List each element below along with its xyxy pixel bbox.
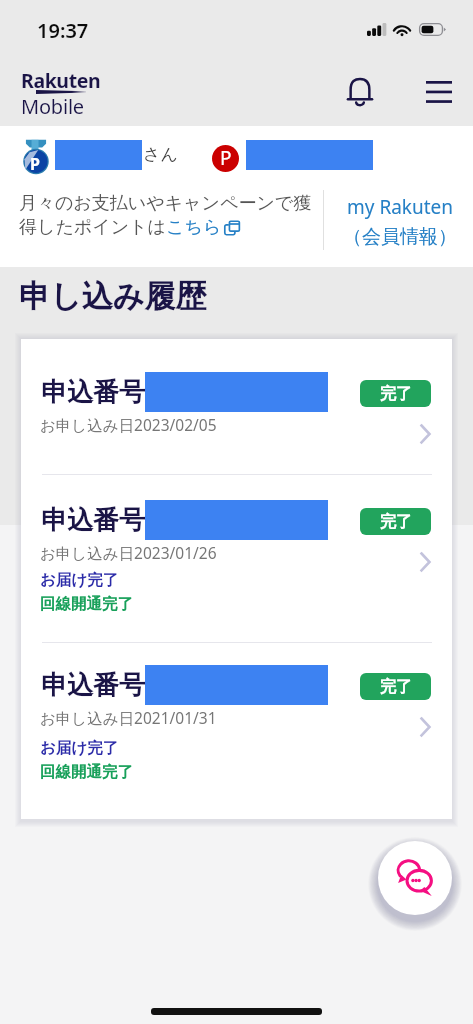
button[interactable]: Chat support: [378, 841, 452, 915]
staticText: 回線開通完了: [40, 762, 133, 782]
staticText: 月々のお支払いやキャンペーンで獲: [19, 192, 312, 215]
staticText: 申込番号: [41, 504, 145, 537]
staticText: Rakuten: [21, 67, 101, 94]
staticText: （会員情報）: [343, 225, 457, 249]
button[interactable]: 申込番号: [21, 339, 452, 474]
button[interactable]: my Rakuten: [339, 194, 461, 249]
staticText: 完了: [380, 677, 412, 697]
staticText: 完了: [380, 512, 412, 532]
button[interactable]: Menu: [415, 68, 463, 116]
staticText: 19:37: [37, 17, 89, 44]
staticText: 申し込み履歴: [19, 277, 207, 316]
staticText: お届け完了: [40, 570, 119, 590]
staticText: お申し込み日2021/01/31: [40, 707, 217, 728]
staticText: お届け完了: [40, 738, 119, 758]
staticText: 完了: [380, 384, 412, 404]
staticText: さん: [143, 144, 178, 165]
button[interactable]: Notifications: [336, 68, 384, 116]
staticText: お申し込み日2023/01/26: [40, 542, 217, 563]
staticText: Mobile: [21, 93, 84, 120]
staticText: こちら: [166, 216, 222, 239]
staticText: 申込番号: [41, 376, 145, 409]
staticText: my Rakuten: [347, 194, 454, 220]
staticText: P: [30, 153, 40, 175]
button[interactable]: 申込番号: [21, 475, 452, 642]
button[interactable]: 申込番号: [21, 643, 452, 819]
button[interactable]: こちら: [166, 216, 240, 239]
staticText: P: [220, 145, 232, 171]
staticText: お申し込み日2023/02/05: [40, 414, 217, 435]
staticText: 回線開通完了: [40, 594, 133, 614]
staticText: 申込番号: [41, 669, 145, 702]
staticText: 得したポイントは: [19, 216, 166, 239]
